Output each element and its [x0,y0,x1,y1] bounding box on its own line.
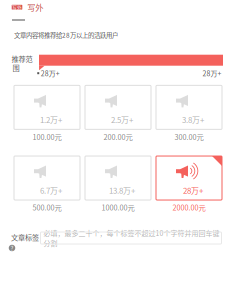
staticText: 围 [12,62,19,73]
staticText: 文章标签 [11,232,39,242]
staticText: 1.2万+ [40,114,62,125]
staticText: 写外 [12,4,22,11]
staticText: 500.00元 [32,202,61,213]
staticText: 2.5万+ [111,114,133,125]
staticText: 28万+ [183,185,203,196]
button[interactable]: 28万+ [156,156,222,213]
staticText: 文章内容将推荐给28万以上的活跃用户 [14,30,118,40]
staticText: 必填，最多二十个，每个标签不超过10个字符并用回车键分割 [43,228,219,248]
button[interactable]: 2.5万+ [85,85,151,142]
button[interactable]: 1.2万+ [14,85,80,142]
staticText: 100.00元 [32,131,61,142]
button[interactable]: 必填，最多二十个，每个标签不超过10个字符并用回车键分割 [40,232,221,244]
staticText: 200.00元 [103,131,132,142]
staticText: 推荐范 [11,53,32,64]
button[interactable]: 13.8万+ [85,156,151,213]
staticText: 28万+ [202,68,221,78]
staticText: ? [10,244,13,252]
button[interactable]: 6.7万+ [14,156,80,213]
button[interactable]: 3.8万+ [156,85,222,142]
staticText: 6.7万+ [40,185,62,196]
staticText: 300.00元 [174,131,203,142]
staticText: 1000.00元 [101,202,134,213]
staticText: 2000.00元 [172,202,205,213]
staticText: 3.8万+ [182,114,204,125]
staticText: 28万+ [41,68,60,78]
staticText: 写外 [27,1,43,13]
button[interactable]: 帮助 [7,243,17,253]
staticText: 13.8万+ [109,185,135,196]
